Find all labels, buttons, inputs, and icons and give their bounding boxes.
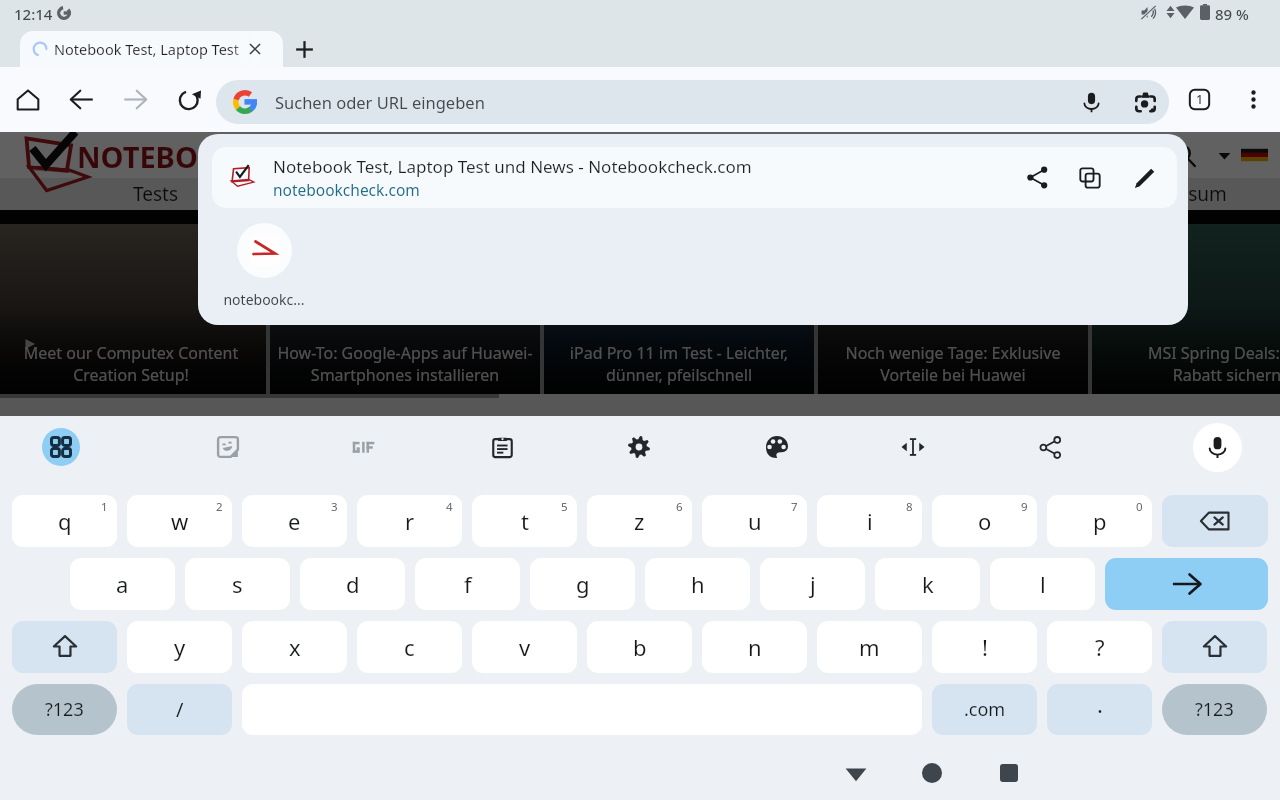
staticText: t [521,506,529,536]
staticText: h [691,569,705,599]
button[interactable]: ?123 [12,684,117,735]
staticText: 1 [101,499,108,515]
button[interactable]: Edit [1121,147,1169,208]
button[interactable]: Recents [982,746,1036,800]
button[interactable]: q [12,495,117,547]
staticText: Meet our Computex Content Creation Setup… [0,342,264,386]
staticText: Notebook Test, Laptop Test und News - No… [273,155,752,178]
button[interactable]: Enter [1105,558,1268,610]
button[interactable]: ! [932,621,1037,673]
button[interactable]: h [645,558,750,610]
button[interactable]: o [932,495,1037,547]
button[interactable]: More options [1231,67,1275,132]
button[interactable]: notebookc... [214,223,314,309]
staticText: m [859,632,880,662]
staticText: Impressum [1125,181,1227,207]
button[interactable]: y [127,621,232,673]
button[interactable]: Stickers [205,424,251,470]
button[interactable]: c [357,621,462,673]
button[interactable]: j [760,558,865,610]
button[interactable]: Voice search [1070,80,1113,124]
staticText: 7 [791,499,798,515]
button[interactable]: Clipboard [479,424,525,470]
staticText: ?123 [1195,697,1234,722]
staticText: 12:14 [14,4,53,24]
button[interactable]: How-To: Google-Apps auf Huawei-Smartphon… [270,224,540,394]
button[interactable]: Meet our Computex Content Creation Setup… [0,224,266,394]
button[interactable]: toolbar [58,67,104,132]
button[interactable]: · [1047,684,1152,735]
button[interactable]: Notebook Test, Laptop Test und News - No… [212,147,1177,208]
button[interactable]: s [185,558,290,610]
button[interactable]: Theme [754,424,800,470]
button[interactable]: Copy [1066,147,1114,208]
button[interactable]: toolbar [5,67,51,132]
button[interactable]: f [415,558,520,610]
staticText: g [576,569,590,599]
button[interactable]: Close tab [239,31,271,67]
staticText: · [1097,695,1103,725]
button[interactable]: Notebook Test, Laptop Test und [20,31,283,67]
button[interactable]: b [587,621,692,673]
button[interactable]: Back [829,746,883,800]
button[interactable]: l [990,558,1095,610]
staticText: ? [1095,632,1105,662]
button[interactable]: d [300,558,405,610]
button[interactable]: Shift [1162,621,1267,673]
button[interactable]: x [242,621,347,673]
button[interactable]: MSI Spring Deals: Bis Rabatt sichern [1092,224,1280,394]
button[interactable]: toolbar [112,67,158,132]
button[interactable]: GIF [342,424,388,470]
button[interactable]: iPad Pro 11 im Test - Leichter, dünner, … [544,224,814,394]
button[interactable]: .com [932,684,1037,735]
staticText: b [633,632,647,662]
button[interactable]: ?123 [1162,684,1267,735]
button[interactable]: Google Lens [1124,80,1167,124]
button[interactable]: v [472,621,577,673]
button[interactable]: g [530,558,635,610]
staticText: a [116,569,129,599]
button[interactable]: Share [1013,147,1061,208]
staticText: notebookc... [223,290,305,309]
button[interactable]: m [817,621,922,673]
staticText: z [634,506,645,536]
button[interactable]: Settings [616,424,662,470]
staticText: j [810,569,816,599]
button[interactable]: / [127,684,232,735]
button[interactable]: Suchen oder URL eingeben [216,80,1169,124]
staticText: v [519,632,531,662]
button[interactable]: toolbar [166,67,212,132]
button[interactable]: Backspace [1162,495,1268,547]
button[interactable]: r [357,495,462,547]
staticText: Suchen oder URL eingeben [275,91,485,113]
staticText: n [748,632,762,662]
button[interactable]: n [702,621,807,673]
button[interactable]: w [127,495,232,547]
staticText: c [404,632,415,662]
button[interactable]: i [817,495,922,547]
button[interactable]: Share [1027,424,1073,470]
button[interactable]: Voice input [1193,423,1242,472]
button[interactable]: More tools [42,428,80,466]
staticText: l [1040,569,1046,599]
button[interactable]: Noch wenige Tage: Exklusive Vorteile bei… [818,224,1088,394]
staticText: notebookcheck.com [273,179,420,200]
staticText: 89 % [1215,4,1249,24]
button[interactable]: Tabs [1177,67,1221,132]
button[interactable]: u [702,495,807,547]
button[interactable]: z [587,495,692,547]
button[interactable]: New tab [286,31,322,67]
button[interactable]: t [472,495,577,547]
button[interactable]: e [242,495,347,547]
button[interactable]: ? [1047,621,1152,673]
button[interactable]: k [875,558,980,610]
button[interactable]: p [1047,495,1152,547]
staticText: d [346,569,360,599]
button[interactable]: Text editing [890,424,936,470]
staticText: ! [982,632,988,662]
button[interactable]: Home [905,746,959,800]
button[interactable]: a [70,558,175,610]
button[interactable]: Shift [12,621,117,673]
